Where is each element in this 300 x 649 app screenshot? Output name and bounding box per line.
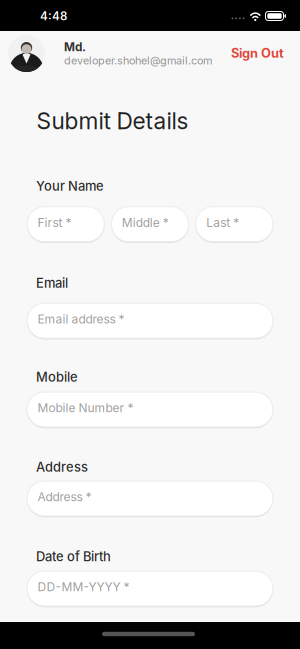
button[interactable]: Middle * <box>111 207 189 242</box>
button[interactable]: Email address * <box>27 303 273 338</box>
button[interactable]: First * <box>27 207 104 242</box>
staticText: Mobile Number * <box>37 401 133 415</box>
button[interactable]: Sign Out <box>231 45 284 61</box>
button[interactable]: Last * <box>196 207 273 242</box>
staticText: Submit Details <box>36 107 188 135</box>
staticText: 4:48 <box>40 9 67 23</box>
button[interactable]: Mobile Number * <box>27 392 273 427</box>
staticText: Md. <box>64 40 86 54</box>
staticText: Sign Out <box>231 45 284 61</box>
staticText: Mobile <box>36 369 78 385</box>
staticText: Email <box>36 275 68 291</box>
button[interactable]: DD-MM-YYYY * <box>27 571 273 606</box>
staticText: Address <box>36 459 88 475</box>
staticText: Last * <box>206 215 239 230</box>
button[interactable]: Address * <box>27 481 273 516</box>
staticText: developer.shohel@gmail.com <box>64 54 212 67</box>
staticText: Middle * <box>122 215 169 230</box>
staticText: First * <box>38 215 72 230</box>
staticText: DD-MM-YYYY * <box>37 580 129 594</box>
staticText: Your Name <box>36 178 104 194</box>
staticText: Address * <box>37 490 91 504</box>
staticText: Date of Birth <box>36 549 111 564</box>
staticText: Email address * <box>37 312 124 326</box>
